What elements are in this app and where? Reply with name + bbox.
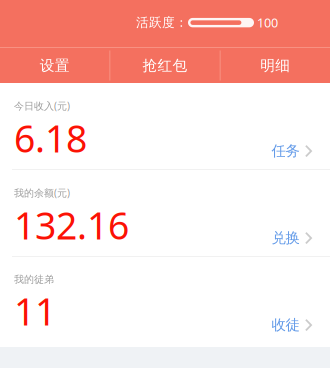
button[interactable]: 兑换 <box>255 222 330 254</box>
staticText: 我的徒弟 <box>14 273 54 286</box>
button[interactable]: 抢红包 <box>110 48 220 83</box>
button[interactable]: 设置 <box>0 48 109 83</box>
staticText: 设置 <box>40 56 70 75</box>
staticText: 132.16 <box>14 200 129 250</box>
staticText: 明细 <box>260 56 290 75</box>
button[interactable]: 收徒 <box>255 309 330 341</box>
staticText: 活跃度： <box>136 15 188 31</box>
staticText: 我的余额(元) <box>14 186 70 200</box>
button[interactable]: 任务 <box>255 135 330 167</box>
staticText: 任务 <box>271 142 299 160</box>
staticText: 100 <box>257 14 278 31</box>
staticText: 11 <box>14 286 56 336</box>
staticText: 今日收入(元) <box>14 99 70 113</box>
staticText: 兑换 <box>271 229 299 247</box>
staticText: 6.18 <box>14 113 87 163</box>
staticText: 抢红包 <box>142 56 187 75</box>
staticText: 收徒 <box>271 316 299 334</box>
button[interactable]: 明细 <box>221 48 330 83</box>
